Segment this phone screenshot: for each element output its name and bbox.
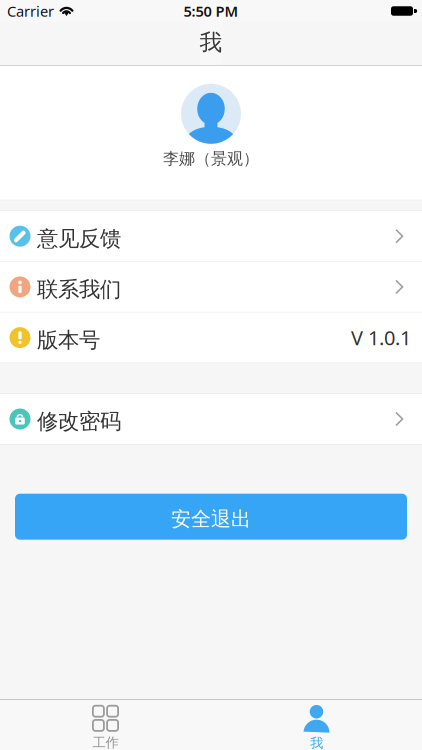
- staticText: 我: [199, 29, 222, 56]
- staticText: 5:50 PM: [183, 1, 238, 21]
- button[interactable]: 安全退出: [15, 494, 407, 540]
- staticText: 安全退出: [171, 507, 251, 531]
- staticText: 我: [310, 735, 323, 750]
- staticText: V 1.0.1: [351, 324, 411, 351]
- staticText: 工作: [92, 734, 118, 750]
- staticText: 联系我们: [37, 276, 121, 302]
- button[interactable]: 我: [211, 700, 422, 750]
- staticText: Carrier: [7, 1, 54, 21]
- button[interactable]: 联系我们: [0, 262, 422, 312]
- button[interactable]: 修改密码: [0, 394, 422, 444]
- staticText: 李娜（景观）: [163, 149, 259, 168]
- staticText: 版本号: [37, 327, 100, 353]
- staticText: 修改密码: [37, 408, 121, 435]
- button[interactable]: 意见反馈: [0, 211, 422, 261]
- staticText: 意见反馈: [37, 226, 121, 252]
- button[interactable]: 工作: [0, 700, 211, 750]
